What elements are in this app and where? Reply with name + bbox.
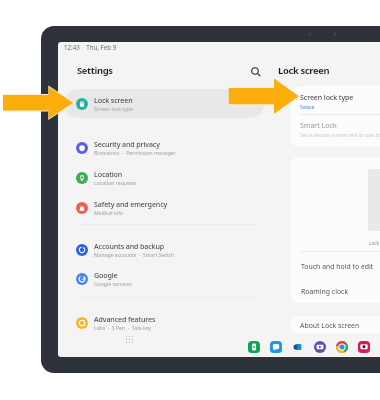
staticText: Lock screen: [94, 95, 133, 105]
staticText: Settings: [77, 64, 113, 77]
button[interactable]: Touch and hold to edit: [291, 255, 380, 277]
button[interactable]: YouTube: [314, 341, 326, 353]
staticText: Google services: [94, 281, 132, 288]
button[interactable]: Location: [64, 163, 264, 192]
button[interactable]: Advanced features: [64, 308, 264, 337]
staticText: Screen lock type: [300, 92, 354, 102]
staticText: Location requests: [94, 180, 137, 187]
button[interactable]: Phone: [248, 341, 260, 353]
staticText: Safety and emergency: [94, 199, 168, 209]
staticText: Labs · S Pen · Side key: [94, 325, 152, 332]
button[interactable]: Safety and emergency: [64, 193, 264, 222]
staticText: Set a secure screen lock to use Smart Lo…: [300, 131, 380, 138]
button[interactable]: About Lock screen: [291, 316, 380, 334]
staticText: Touch and hold to edit: [301, 262, 374, 271]
button[interactable]: Search: [248, 64, 262, 78]
staticText: Smart Lock: [300, 120, 337, 130]
staticText: Google: [94, 270, 118, 280]
button[interactable]: Lock screen: [64, 89, 264, 118]
button[interactable]: Accounts and backup: [64, 235, 264, 264]
button[interactable]: Outlook: [292, 341, 304, 353]
button[interactable]: Apps: [125, 335, 134, 344]
button[interactable]: Security and privacy: [64, 133, 264, 162]
staticText: About Lock screen: [300, 321, 360, 330]
staticText: Manage accounts · Smart Switch: [94, 252, 175, 259]
staticText: Screen lock type: [94, 106, 133, 113]
staticText: Location: [94, 169, 123, 179]
staticText: Security and privacy: [94, 139, 160, 149]
button[interactable]: YT Music: [358, 341, 370, 353]
button[interactable]: Screen lock type: [300, 92, 380, 110]
staticText: Biometrics · Permission manager: [94, 150, 176, 157]
staticText: Roaming clock: [301, 287, 349, 296]
button[interactable]: Roaming clock: [291, 280, 380, 302]
staticText: Accounts and backup: [94, 241, 165, 251]
staticText: Advanced features: [94, 314, 156, 324]
staticText: Lock screen: [278, 64, 330, 77]
staticText: Swipe: [300, 103, 315, 110]
staticText: Lock screen: [369, 240, 380, 246]
button[interactable]: Chrome: [336, 341, 348, 353]
button[interactable]: Smart Lock: [300, 120, 380, 138]
staticText: Medical info: [94, 210, 124, 217]
button[interactable]: Messages: [270, 341, 282, 353]
staticText: 12:43 Thu, Feb 9: [64, 43, 117, 51]
button[interactable]: Google: [64, 264, 264, 293]
